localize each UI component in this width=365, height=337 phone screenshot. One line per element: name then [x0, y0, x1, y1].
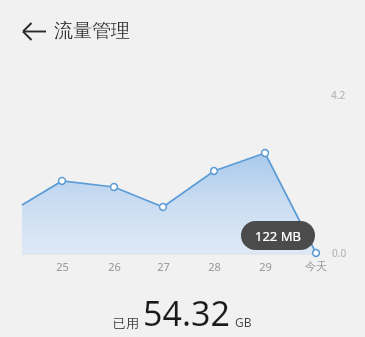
button[interactable]: Back — [14, 11, 54, 51]
staticText: 4.2 — [331, 88, 346, 102]
staticText: 29 — [259, 259, 272, 274]
staticText: 25 — [56, 259, 69, 274]
staticText: 已用 — [113, 315, 139, 331]
staticText: 54.32 — [143, 290, 230, 336]
staticText: 28 — [208, 259, 221, 274]
staticText: 今天 — [305, 259, 327, 273]
button[interactable]: 122 MB — [241, 221, 315, 250]
staticText: 26 — [108, 259, 121, 274]
staticText: 0.0 — [332, 246, 347, 260]
staticText: GB — [235, 314, 252, 330]
staticText: 流量管理 — [54, 19, 130, 43]
staticText: 27 — [157, 259, 170, 274]
staticText: 122 MB — [255, 227, 301, 245]
